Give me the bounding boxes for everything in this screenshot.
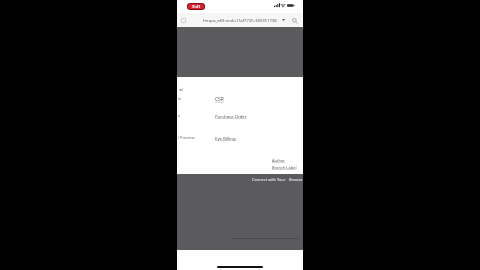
staticText: Author bbox=[272, 158, 286, 163]
button[interactable]: Connect with Your bbox=[252, 177, 286, 182]
button[interactable]: Tabs bbox=[178, 15, 188, 25]
staticText: ail bbox=[179, 87, 184, 92]
staticText: Eye Billing bbox=[215, 135, 236, 141]
staticText: e bbox=[178, 113, 181, 118]
staticText: freqva_a69.mobi.l1af7725-383351738 bbox=[203, 18, 277, 24]
staticText: Browse bbox=[289, 177, 303, 182]
staticText: l Preview bbox=[178, 135, 195, 140]
staticText: le bbox=[178, 96, 182, 101]
button[interactable]: Author bbox=[272, 158, 286, 163]
staticText: CSR bbox=[215, 96, 224, 103]
button[interactable]: Branch Label bbox=[272, 165, 297, 170]
button[interactable]: Browse bbox=[289, 177, 303, 182]
button[interactable]: Purchase Order bbox=[215, 113, 247, 119]
button[interactable]: Search bbox=[289, 15, 300, 26]
button[interactable]: CSR bbox=[215, 96, 224, 103]
staticText: Connect with Your bbox=[252, 177, 286, 182]
staticText: 9:41 bbox=[192, 4, 201, 9]
staticText: Branch Label bbox=[272, 165, 297, 170]
button[interactable]: Eye Billing bbox=[215, 135, 236, 141]
staticText: Purchase Order bbox=[215, 113, 247, 119]
